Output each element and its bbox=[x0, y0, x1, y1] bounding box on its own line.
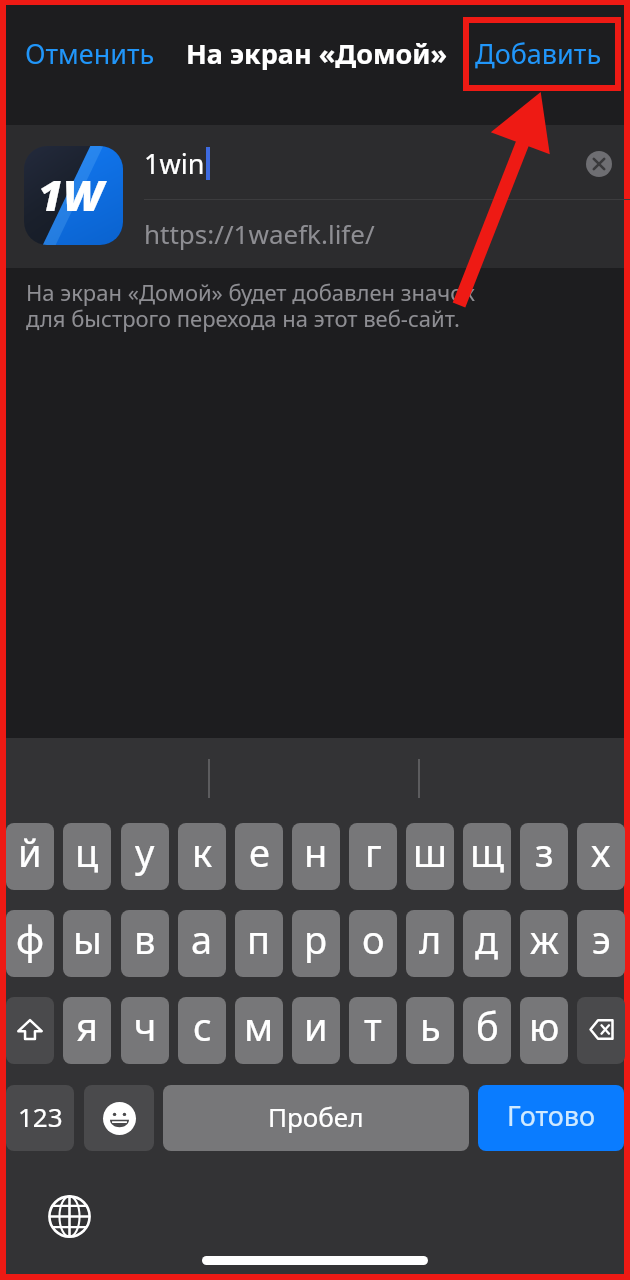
button[interactable]: а bbox=[178, 910, 226, 977]
staticText: ю bbox=[529, 1000, 560, 1052]
button[interactable]: с bbox=[178, 997, 226, 1064]
button[interactable]: т bbox=[349, 997, 397, 1064]
button[interactable]: р bbox=[292, 910, 340, 977]
staticText: 123 bbox=[18, 1099, 63, 1134]
staticText: х bbox=[591, 826, 611, 878]
staticText: Добавить bbox=[475, 35, 602, 72]
button[interactable]: э bbox=[577, 910, 625, 977]
button[interactable]: ш bbox=[406, 823, 454, 890]
button[interactable]: ц bbox=[63, 823, 111, 890]
button[interactable]: Удалить bbox=[577, 997, 625, 1064]
staticText: Готово bbox=[507, 1097, 596, 1134]
staticText: а bbox=[191, 913, 213, 965]
staticText: https://1waefk.life/ bbox=[144, 216, 375, 251]
staticText: в bbox=[134, 913, 156, 965]
staticText: 1W bbox=[38, 165, 104, 224]
staticText: ж bbox=[530, 913, 559, 965]
button[interactable]: б bbox=[463, 997, 511, 1064]
staticText: ф bbox=[16, 913, 45, 965]
staticText: к bbox=[192, 826, 213, 878]
button[interactable]: ч bbox=[121, 997, 169, 1064]
staticText: я bbox=[76, 1000, 98, 1052]
button[interactable]: 123 bbox=[6, 1085, 74, 1151]
button[interactable]: у bbox=[121, 823, 169, 890]
button[interactable]: Готово bbox=[478, 1085, 624, 1151]
staticText: р bbox=[304, 913, 328, 965]
button[interactable]: д bbox=[463, 910, 511, 977]
button[interactable]: Добавить bbox=[469, 25, 608, 82]
staticText: б bbox=[476, 1000, 499, 1052]
staticText: Отменить bbox=[25, 35, 155, 72]
button[interactable]: ы bbox=[63, 910, 111, 977]
button[interactable]: ж bbox=[520, 910, 568, 977]
staticText: ы bbox=[73, 913, 102, 965]
staticText: Пробел bbox=[268, 1099, 364, 1134]
button[interactable]: з bbox=[520, 823, 568, 890]
staticText: ч bbox=[134, 1000, 157, 1052]
button[interactable]: к bbox=[178, 823, 226, 890]
button[interactable]: х bbox=[577, 823, 625, 890]
staticText: ц bbox=[75, 826, 99, 878]
button[interactable]: й bbox=[6, 823, 54, 890]
staticText: На экран «Домой» будет добавлен значок bbox=[26, 277, 475, 307]
staticText: м bbox=[244, 1000, 274, 1052]
button[interactable]: ь bbox=[406, 997, 454, 1064]
button[interactable]: Эмодзи bbox=[84, 1085, 154, 1151]
button[interactable]: я bbox=[63, 997, 111, 1064]
staticText: э bbox=[592, 913, 611, 965]
button[interactable]: и bbox=[292, 997, 340, 1064]
button[interactable]: Пробел bbox=[163, 1085, 469, 1151]
staticText: н bbox=[304, 826, 328, 878]
staticText: з bbox=[535, 826, 554, 878]
staticText: п bbox=[247, 913, 271, 965]
button[interactable]: н bbox=[292, 823, 340, 890]
button[interactable]: г bbox=[349, 823, 397, 890]
button[interactable]: в bbox=[121, 910, 169, 977]
staticText: у bbox=[135, 826, 155, 878]
staticText: о bbox=[362, 913, 385, 965]
staticText: для быстрого перехода на этот веб-сайт. bbox=[26, 303, 460, 333]
staticText: с bbox=[193, 1000, 212, 1052]
button[interactable]: л bbox=[406, 910, 454, 977]
staticText: л bbox=[419, 913, 442, 965]
button[interactable]: о bbox=[349, 910, 397, 977]
button[interactable]: щ bbox=[463, 823, 511, 890]
staticText: щ bbox=[470, 826, 505, 878]
button[interactable]: Отменить bbox=[19, 25, 161, 82]
button[interactable]: п bbox=[235, 910, 283, 977]
staticText: й bbox=[18, 826, 42, 878]
button[interactable]: ю bbox=[520, 997, 568, 1064]
button[interactable]: ф bbox=[6, 910, 54, 977]
staticText: На экран «Домой» bbox=[186, 35, 448, 72]
button[interactable]: е bbox=[235, 823, 283, 890]
button[interactable]: Shift bbox=[6, 997, 54, 1064]
staticText: г bbox=[365, 826, 382, 878]
staticText: ь bbox=[420, 1000, 441, 1052]
staticText: 1win bbox=[144, 145, 205, 182]
button[interactable]: Сменить язык bbox=[45, 1192, 93, 1240]
button[interactable]: м bbox=[235, 997, 283, 1064]
button[interactable]: Очистить bbox=[580, 145, 617, 182]
staticText: д bbox=[475, 913, 499, 965]
staticText: и bbox=[304, 1000, 328, 1052]
staticText: ш bbox=[413, 826, 447, 878]
staticText: е bbox=[249, 826, 270, 878]
staticText: т bbox=[364, 1000, 382, 1052]
